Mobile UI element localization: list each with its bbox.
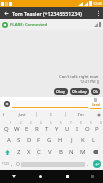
staticText: K — [81, 136, 85, 144]
staticText: H — [58, 136, 63, 144]
button[interactable]: N — [66, 146, 77, 158]
button[interactable]: 3 — [22, 120, 32, 133]
button[interactable]: 6 — [52, 120, 62, 133]
staticText: 7 — [70, 121, 72, 125]
staticText: P — [95, 125, 99, 133]
button[interactable]: 0 — [92, 120, 102, 133]
button[interactable]: Ok — [91, 88, 100, 95]
button[interactable]: Can't talk right now — [58, 72, 100, 85]
button[interactable]: S — [14, 133, 24, 146]
button[interactable]: Shift — [1, 146, 14, 158]
staticText: 3 — [30, 121, 32, 125]
staticText: 8 — [80, 121, 82, 125]
button[interactable]: V — [44, 146, 55, 158]
button[interactable]: F — [34, 133, 44, 146]
button[interactable]: M — [77, 146, 88, 158]
button[interactable]: B — [55, 146, 66, 158]
button[interactable]: H — [55, 133, 66, 146]
staticText: I — [76, 125, 79, 133]
button[interactable]: G — [44, 133, 55, 146]
button[interactable]: 1 — [1, 120, 12, 133]
button[interactable]: More options — [93, 7, 103, 19]
button[interactable]: Expand suggestions — [0, 110, 7, 119]
staticText: Tom Teasier (+12345551234) — [12, 10, 93, 17]
staticText: Oh okay — [72, 89, 87, 94]
button[interactable]: Z — [14, 146, 24, 158]
staticText: J — [71, 136, 73, 144]
staticText: S — [17, 136, 21, 144]
staticText: , — [11, 161, 13, 168]
staticText: X — [27, 148, 31, 156]
button[interactable]: 9 — [82, 120, 92, 133]
staticText: 0 — [100, 121, 102, 125]
staticText: V — [48, 148, 52, 156]
button[interactable]: A — [4, 133, 14, 146]
button[interactable]: Send — [90, 98, 101, 109]
staticText: T — [45, 125, 49, 133]
staticText: Q — [4, 125, 9, 133]
staticText: A — [7, 136, 11, 144]
staticText: C — [37, 148, 41, 156]
staticText: N — [69, 148, 74, 156]
button[interactable]: I'm — [66, 110, 94, 119]
button[interactable]: D — [24, 133, 34, 146]
button[interactable]: I — [37, 110, 65, 119]
button[interactable]: Back — [0, 7, 12, 19]
staticText: F — [37, 136, 41, 144]
staticText: Just — [18, 112, 26, 118]
button[interactable]: Backspace — [88, 146, 102, 158]
button[interactable]: 8 — [72, 120, 82, 133]
button[interactable]: 5 — [42, 120, 52, 133]
button[interactable]: 4 — [32, 120, 42, 133]
button[interactable]: Emoji — [14, 158, 21, 170]
button[interactable]: Enter — [91, 158, 102, 170]
staticText: E — [25, 125, 29, 133]
staticText: M — [80, 148, 86, 156]
staticText: 2 — [20, 121, 22, 125]
staticText: ?123 — [2, 162, 9, 166]
staticText: Ok — [93, 89, 98, 94]
button[interactable]: ?123 — [1, 158, 9, 170]
staticText: B — [59, 148, 63, 156]
button[interactable]: K — [77, 133, 88, 146]
button[interactable]: X — [24, 146, 34, 158]
button[interactable]: J — [66, 133, 77, 146]
button[interactable]: 2 — [12, 120, 22, 133]
staticText: 6 — [60, 121, 62, 125]
button[interactable]: 7 — [62, 120, 72, 133]
button[interactable]: Recents — [54, 170, 81, 183]
staticText: FLARE: Connected — [10, 22, 48, 28]
button[interactable]: Period — [85, 158, 91, 170]
staticText: G — [47, 136, 52, 144]
button[interactable]: Okay — [54, 88, 68, 95]
button[interactable]: L — [88, 133, 99, 146]
staticText: . — [87, 161, 89, 168]
staticText: 4 — [40, 121, 42, 125]
staticText: 5 — [50, 121, 52, 125]
staticText: R — [35, 125, 39, 133]
button[interactable]: Comma — [9, 158, 14, 170]
staticText: Y — [55, 125, 59, 133]
staticText: I — [50, 112, 52, 118]
staticText: Z — [17, 148, 21, 156]
staticText: Can't talk right now — [59, 73, 99, 79]
button[interactable]: Home — [27, 170, 54, 183]
button[interactable]: Oh okay — [70, 88, 89, 95]
staticText: O — [85, 125, 90, 133]
button[interactable]: Screenshot — [81, 170, 103, 183]
staticText: L — [92, 136, 96, 144]
button[interactable]: C — [34, 146, 44, 158]
staticText: 1 — [10, 121, 12, 125]
button[interactable]: Back — [0, 170, 27, 183]
button[interactable]: Just — [7, 110, 36, 119]
button[interactable]: Keyboard settings — [94, 110, 103, 119]
staticText: Okay — [56, 89, 66, 94]
staticText: Send — [92, 103, 100, 107]
staticText: D — [27, 136, 32, 144]
staticText: 12:41 PM — [80, 79, 96, 84]
button[interactable]: Attach — [2, 99, 11, 108]
staticText: 9 — [90, 121, 92, 125]
staticText: W — [14, 125, 20, 133]
